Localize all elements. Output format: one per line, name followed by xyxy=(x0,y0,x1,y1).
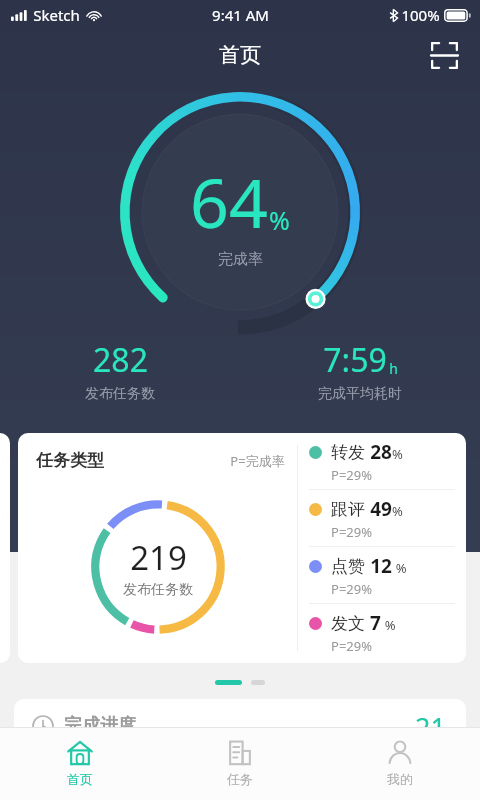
staticText: 282 xyxy=(93,338,148,382)
staticText: 首页 xyxy=(219,42,261,68)
staticText: 28 xyxy=(370,439,392,465)
staticText: 首页 xyxy=(67,771,93,787)
button[interactable]: Scan QR code xyxy=(424,35,464,75)
staticText: 完成率 xyxy=(218,250,263,269)
staticText: 49 xyxy=(370,496,392,522)
button[interactable]: 发文 xyxy=(309,604,455,660)
staticText: 7 xyxy=(370,610,381,636)
button[interactable]: 首页 xyxy=(0,728,160,800)
button[interactable]: 我的 xyxy=(320,728,480,800)
staticText: 我的 xyxy=(387,771,413,787)
staticText: 任务 xyxy=(227,771,253,787)
staticText: 100% xyxy=(401,5,440,25)
staticText: 完成平均耗时 xyxy=(318,385,402,403)
staticText: 发布任务数 xyxy=(123,581,193,599)
staticText: % xyxy=(392,559,407,577)
button[interactable]: 任务类型 xyxy=(18,433,466,663)
staticText: % xyxy=(392,502,403,520)
staticText: 任务类型 xyxy=(36,450,104,471)
staticText: 64 xyxy=(190,155,268,248)
staticText: P=29% xyxy=(331,580,372,598)
button[interactable]: 转发 xyxy=(309,433,455,489)
staticText: % xyxy=(381,616,396,634)
staticText: 7:59 xyxy=(323,338,387,382)
staticText: P=29% xyxy=(331,466,372,484)
button[interactable]: 282 xyxy=(0,338,240,403)
button[interactable]: 7:59 xyxy=(240,338,480,403)
staticText: 21 xyxy=(415,709,446,746)
button[interactable]: 点赞 xyxy=(309,547,455,603)
staticText: h xyxy=(389,359,398,378)
staticText: 发布任务数 xyxy=(85,385,155,403)
button[interactable]: 跟评 xyxy=(309,490,455,546)
staticText: P=29% xyxy=(331,637,372,655)
staticText: 219 xyxy=(130,535,187,580)
staticText: 跟评 xyxy=(331,499,365,520)
staticText: 9:41 AM xyxy=(212,5,269,25)
staticText: 点赞 xyxy=(331,556,365,577)
staticText: 12 xyxy=(370,553,392,579)
staticText: 转发 xyxy=(331,442,365,463)
staticText: % xyxy=(392,445,403,463)
button[interactable]: 任务 xyxy=(160,728,320,800)
button[interactable]: 完成进度 xyxy=(14,699,466,789)
staticText: 完成进度 xyxy=(64,714,136,737)
staticText: % xyxy=(269,203,290,237)
staticText: Sketch xyxy=(33,5,80,25)
staticText: P=完成率 xyxy=(230,452,285,470)
staticText: P=29% xyxy=(331,523,372,541)
staticText: 发文 xyxy=(331,613,365,634)
